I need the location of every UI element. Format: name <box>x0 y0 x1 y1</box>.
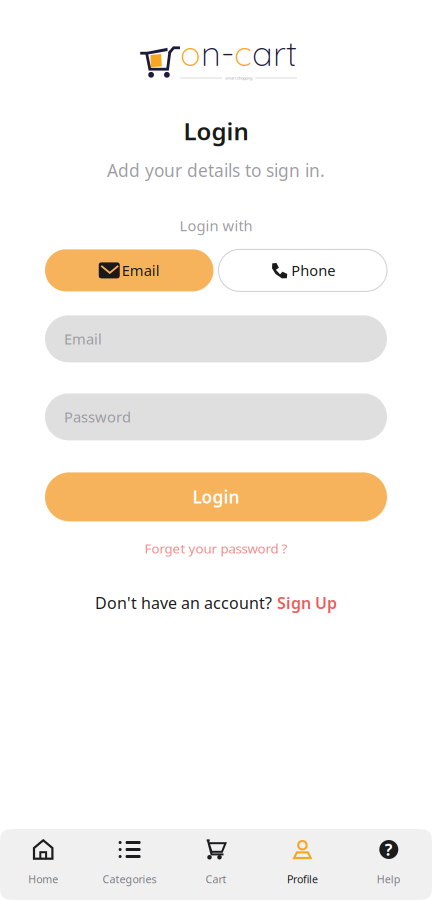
button[interactable]: Login <box>45 472 387 521</box>
staticText: Password <box>64 407 131 427</box>
staticText: Email <box>122 261 160 280</box>
staticText: n- <box>201 31 234 75</box>
staticText: smart shopping <box>225 75 252 81</box>
staticText: ? <box>385 839 393 860</box>
staticText: Login <box>183 115 248 147</box>
button[interactable]: Home <box>0 829 86 900</box>
staticText: Phone <box>291 261 335 280</box>
button[interactable]: Categories <box>86 829 173 900</box>
staticText: Forget your password ? <box>144 539 287 557</box>
staticText: Categories <box>103 872 157 886</box>
staticText: Login with <box>179 216 252 235</box>
staticText: Don't have an account? <box>95 592 272 613</box>
button[interactable]: Cart <box>173 829 259 900</box>
staticText: Profile <box>287 872 318 886</box>
staticText: Login <box>192 485 239 508</box>
staticText: o <box>180 31 201 75</box>
button[interactable]: Password <box>45 393 387 440</box>
staticText: Home <box>28 872 58 886</box>
staticText: Help <box>377 872 401 886</box>
staticText: Cart <box>205 872 226 886</box>
button[interactable]: ? <box>346 829 432 900</box>
staticText: Add your details to sign in. <box>107 159 325 182</box>
staticText: Email <box>64 329 102 349</box>
button[interactable]: Phone <box>218 249 387 291</box>
button[interactable]: Email <box>45 315 387 362</box>
button[interactable]: Profile <box>259 829 346 900</box>
button[interactable]: Email <box>45 249 213 291</box>
button[interactable]: Forget your password ? <box>144 539 287 557</box>
staticText: art <box>252 31 297 75</box>
staticText: c <box>234 31 252 75</box>
button[interactable]: Sign Up <box>277 592 337 613</box>
staticText: Sign Up <box>277 592 337 613</box>
